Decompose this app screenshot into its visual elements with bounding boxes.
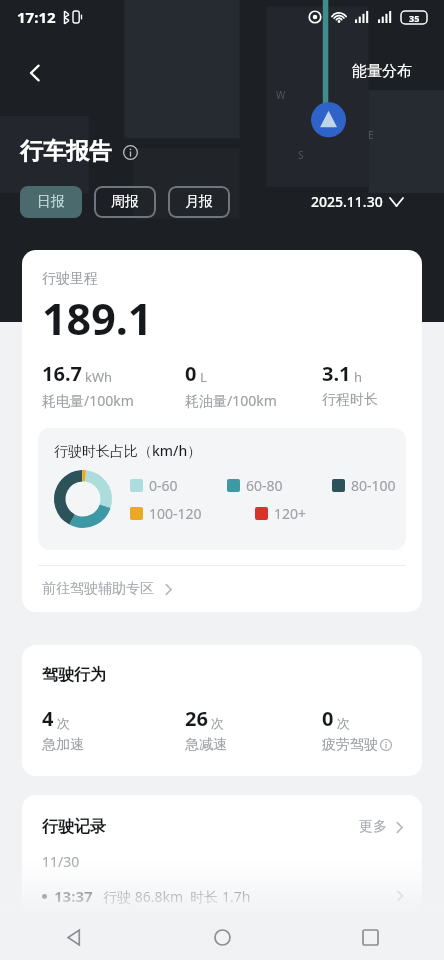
staticText: 行程时长 [322, 391, 378, 409]
staticText: 更多 [359, 818, 387, 836]
button[interactable]: Back [0, 914, 148, 960]
staticText: 120+ [274, 504, 307, 523]
staticText: 26 [185, 705, 208, 732]
staticText: 16.7 [42, 360, 82, 387]
staticText: 行驶里程 [42, 270, 98, 288]
staticText: 次 [211, 715, 224, 731]
staticText: 35 [409, 12, 420, 24]
button[interactable]: 2025.11.30 [311, 192, 403, 211]
staticText: L [200, 368, 207, 386]
staticText: 前往驾驶辅助专区 [42, 580, 154, 598]
button[interactable]: 13:37 [22, 886, 422, 906]
staticText: 日报 [37, 193, 65, 211]
button[interactable]: Back [12, 50, 58, 96]
staticText: 疲劳驾驶 [322, 736, 378, 754]
staticText: 100-120 [149, 504, 202, 523]
staticText: S [298, 148, 304, 162]
staticText: 60-80 [246, 476, 283, 495]
button[interactable]: 更多 [359, 818, 406, 836]
staticText: kWh [85, 368, 113, 386]
staticText: 17:12 [17, 7, 56, 27]
staticText: 行驶 86.8km 时长 1.7h [103, 887, 251, 906]
staticText: 行驶时长占比（km/h） [54, 441, 202, 460]
staticText: 0 [185, 360, 197, 387]
button[interactable]: Recent apps [296, 914, 444, 960]
button[interactable]: 周报 [94, 186, 156, 218]
staticText: 周报 [111, 193, 139, 211]
button[interactable]: Info [119, 141, 141, 163]
staticText: 0 [322, 705, 334, 732]
staticText: 行驶记录 [42, 817, 106, 837]
staticText: W [276, 88, 286, 102]
staticText: 耗电量/100km [42, 391, 134, 410]
staticText: 驾驶行为 [42, 665, 106, 685]
staticText: h [354, 368, 363, 386]
staticText: 次 [57, 715, 70, 731]
staticText: 80-100 [351, 476, 396, 495]
staticText: 急减速 [185, 736, 227, 754]
staticText: 能量分布 [352, 62, 412, 81]
staticText: 4 [42, 705, 54, 732]
button[interactable]: 月报 [168, 186, 230, 218]
staticText: 189.1 [42, 289, 153, 348]
staticText: 13:37 [54, 886, 93, 906]
staticText: 次 [337, 715, 350, 731]
staticText: 11/30 [42, 852, 80, 871]
button[interactable]: 前往驾驶辅助专区 [22, 566, 422, 612]
staticText: 急加速 [42, 736, 84, 754]
staticText: 行车报告 [20, 137, 112, 166]
staticText: 月报 [185, 193, 213, 211]
button[interactable]: 日报 [20, 186, 82, 218]
staticText: 2025.11.30 [311, 192, 383, 211]
staticText: E [368, 128, 374, 142]
button[interactable]: 能量分布 [352, 62, 412, 81]
button[interactable]: Home [148, 914, 296, 960]
staticText: 耗油量/100km [185, 391, 277, 410]
staticText: 3.1 [322, 360, 351, 387]
staticText: 0-60 [149, 476, 178, 495]
